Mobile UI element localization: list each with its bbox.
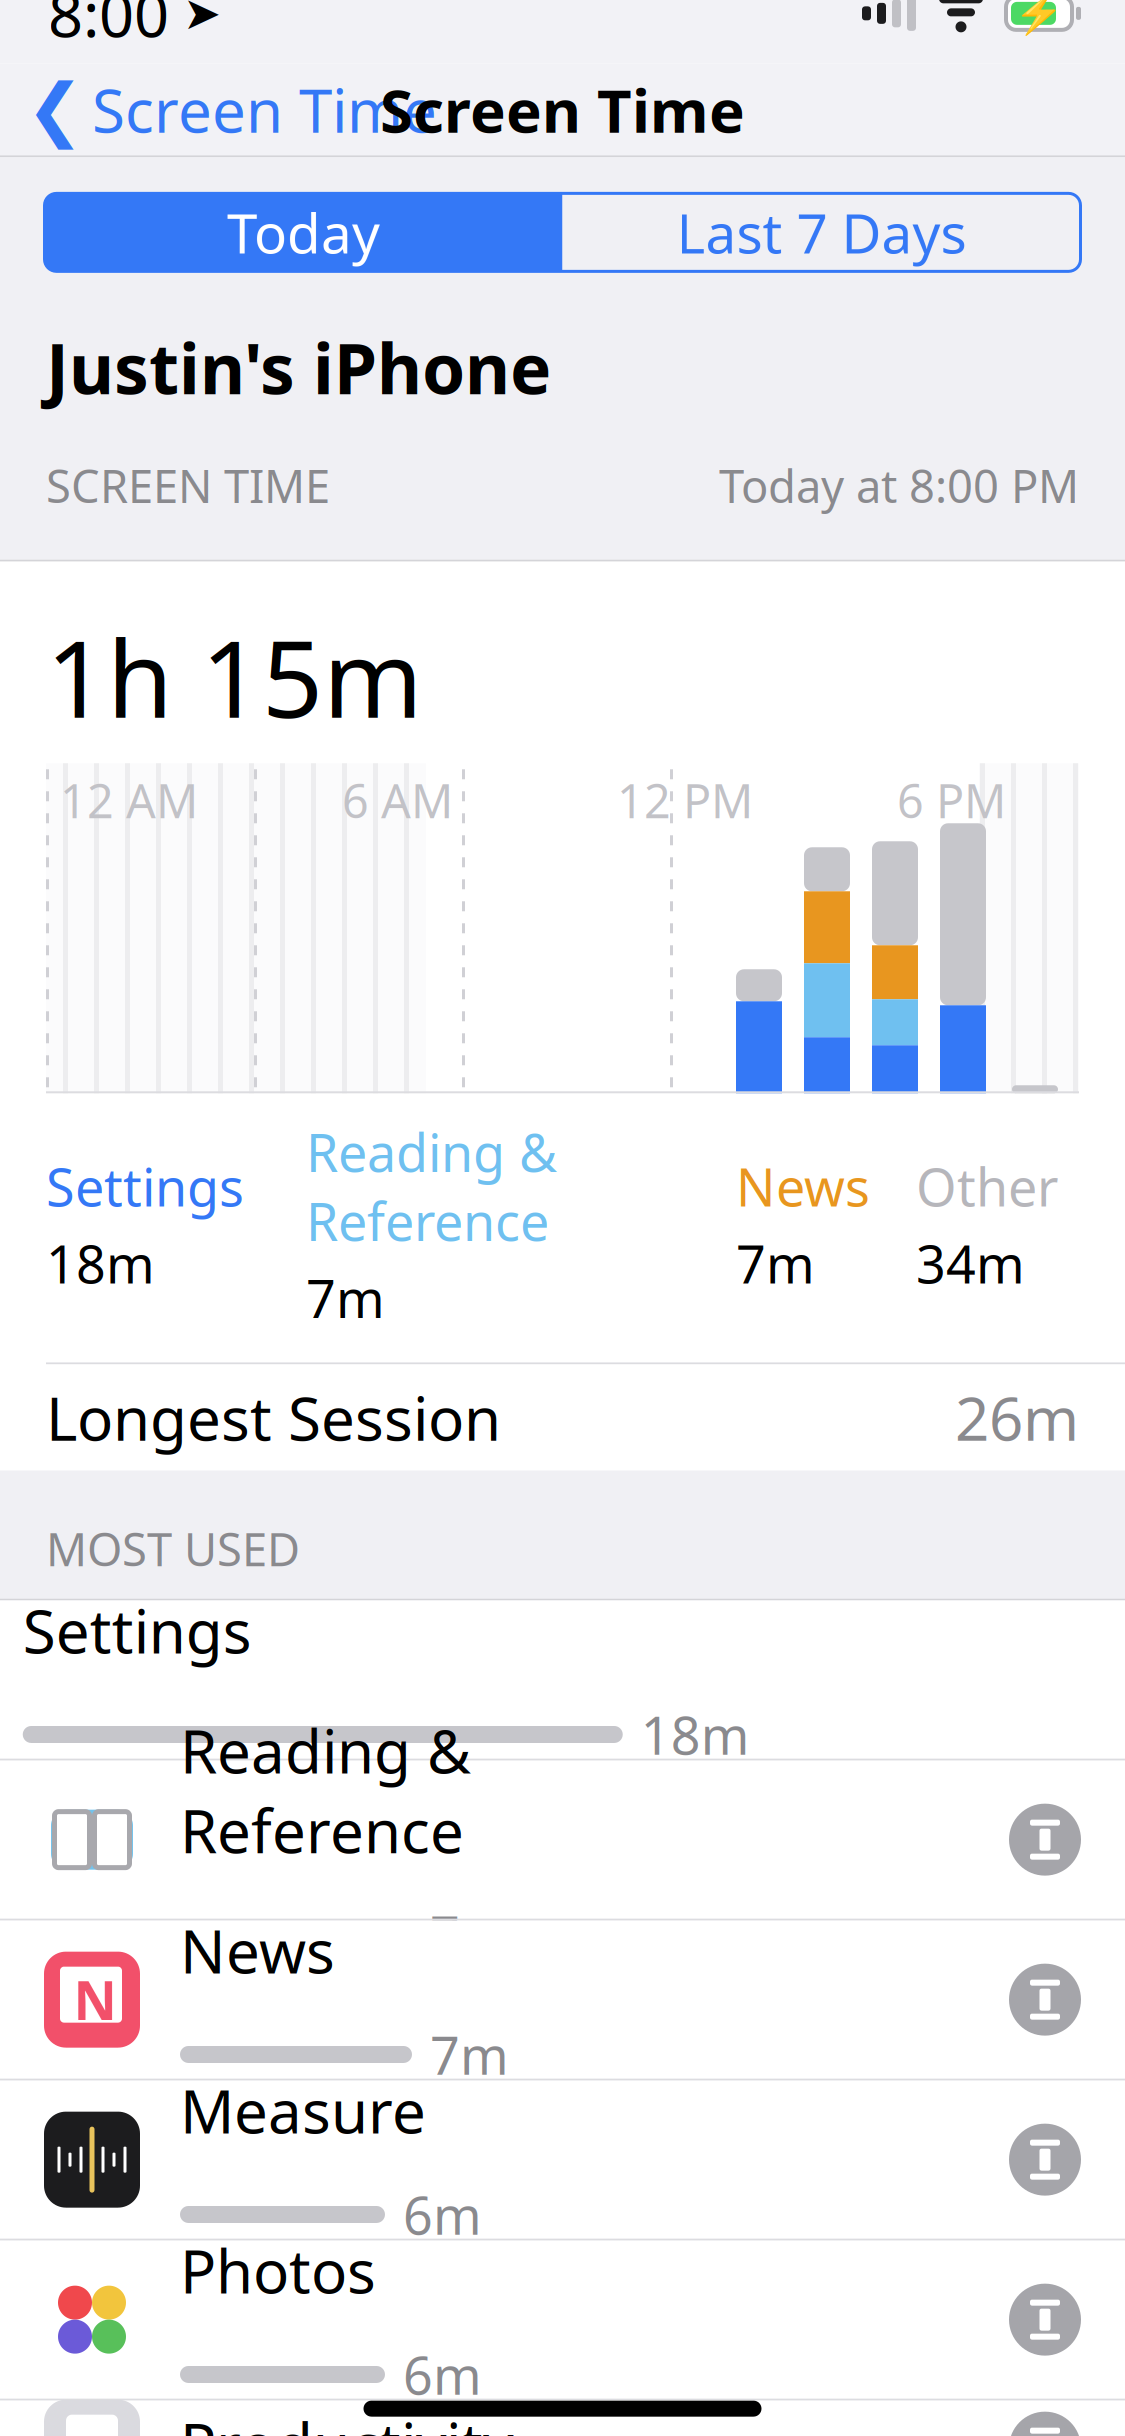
staticText: 34m <box>916 1229 1025 1298</box>
staticText: News <box>736 1152 870 1221</box>
staticText: 7m <box>430 1900 509 1969</box>
staticText: 12 AM <box>60 769 198 831</box>
staticText: Settings <box>46 1152 244 1221</box>
button[interactable]: Measure <box>0 2081 1125 2239</box>
staticText: ➤ <box>169 0 221 39</box>
button[interactable]: Settings <box>0 1601 1125 1759</box>
button[interactable]: Productivity <box>0 2401 1125 2436</box>
staticText: 12 PM <box>617 769 753 831</box>
staticText: News <box>180 1910 335 1990</box>
staticText: 18m <box>46 1229 155 1298</box>
button[interactable]: N <box>0 1921 1125 2079</box>
staticText: 6 AM <box>342 769 453 831</box>
staticText: ⚡ <box>1014 0 1064 36</box>
staticText: Last 7 Days <box>676 196 966 269</box>
staticText: 7m <box>306 1263 385 1332</box>
staticText: Settings <box>23 1590 252 1670</box>
staticText: Reading & Reference <box>306 1117 557 1255</box>
staticText: Justin's iPhone <box>46 321 551 413</box>
button[interactable]: Last 7 Days <box>562 193 1080 271</box>
staticText: Screen Time <box>380 69 745 149</box>
staticText: ❮ <box>26 70 84 149</box>
staticText: SCREEN TIME <box>46 455 330 516</box>
staticText: Measure <box>180 2070 426 2150</box>
staticText: 6 PM <box>897 769 1006 831</box>
staticText: MOST USED <box>46 1518 300 1579</box>
staticText: Other <box>916 1152 1058 1221</box>
staticText: N <box>73 1964 116 2035</box>
staticText: 18m <box>641 1700 750 1769</box>
staticText: 7m <box>430 2020 509 2089</box>
button[interactable]: Reading & Reference <box>0 1761 1125 1919</box>
staticText: 1h 15m <box>46 606 423 747</box>
staticText: Screen Time <box>92 69 437 149</box>
staticText: 7m <box>736 1229 815 1298</box>
button[interactable]: ❮ <box>0 57 437 161</box>
button[interactable]: Longest Session <box>0 1364 1125 1470</box>
staticText: Today at 8:00 PM <box>719 455 1079 516</box>
staticText: 26m <box>955 1378 1079 1457</box>
staticText: Photos <box>180 2230 376 2310</box>
button[interactable]: Today <box>44 193 562 271</box>
staticText: Today <box>227 196 380 269</box>
staticText: 8:00 <box>48 0 169 54</box>
staticText: 6m <box>403 2340 482 2409</box>
staticText: Productivity <box>180 2404 514 2436</box>
staticText: 6m <box>403 2180 482 2249</box>
button[interactable]: Photos <box>0 2241 1125 2399</box>
staticText: Longest Session <box>46 1378 501 1457</box>
staticText: Reading & Reference <box>180 1710 471 1870</box>
